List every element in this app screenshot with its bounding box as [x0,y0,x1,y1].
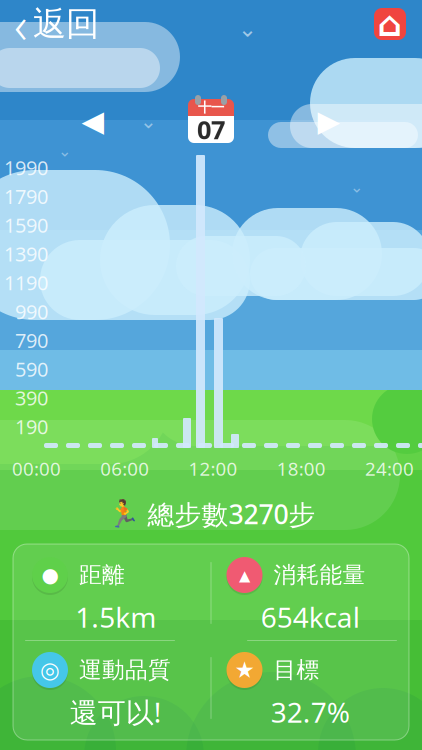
staticText: 1190 [4,269,48,296]
staticText: ⌂ [377,4,402,44]
staticText: ⌄ [140,110,157,133]
staticText: 1590 [4,212,48,238]
staticText: ‹ [14,0,27,58]
staticText: 1390 [4,240,48,267]
staticText: ⌄ [58,142,71,160]
button[interactable]: ⌂ [368,2,412,46]
staticText: 1790 [4,183,48,209]
button[interactable]: ◎ [17,641,210,735]
staticText: 返回 [33,3,99,44]
staticText: 590 [15,356,48,382]
button[interactable]: ● [17,546,210,640]
staticText: 運動品質 [79,656,171,684]
button[interactable]: ▴ [211,546,405,640]
staticText: ▴ [239,562,250,588]
button[interactable]: ★ [211,641,405,735]
staticText: ♥ [384,21,395,35]
staticText: ⌄ [238,16,257,42]
staticText: 🏃 [106,499,139,529]
button[interactable]: ▶ [306,98,352,144]
staticText: ⌄ [350,178,363,196]
button[interactable]: ◀ [70,98,116,144]
button[interactable]: ‹ [0,0,109,48]
staticText: 目標 [273,656,319,684]
staticText: 06:00 [100,456,149,481]
staticText: 190 [15,413,48,440]
staticText: 07 [197,113,225,146]
staticText: ◎ [40,657,60,683]
staticText: ▶ [317,104,340,138]
staticText: 654kcal [261,598,360,636]
staticText: 18:00 [277,456,326,481]
staticText: 十一 [198,99,224,116]
staticText: ◀ [81,104,104,138]
staticText: 1.5km [75,598,156,636]
staticText: 距離 [79,561,125,589]
staticText: 790 [15,327,48,353]
staticText: 390 [15,384,48,411]
staticText: 32.7% [271,693,350,731]
staticText: 24:00 [365,456,414,481]
staticText: 990 [15,298,48,325]
staticText: 00:00 [12,456,61,481]
staticText: 12:00 [188,456,237,481]
staticText: 消耗能量 [273,561,365,589]
staticText: 還可以! [70,693,162,731]
staticText: ● [41,564,58,586]
staticText: 總步數3270步 [147,496,315,532]
staticText: 1990 [4,154,48,181]
staticText: ★ [234,657,254,683]
